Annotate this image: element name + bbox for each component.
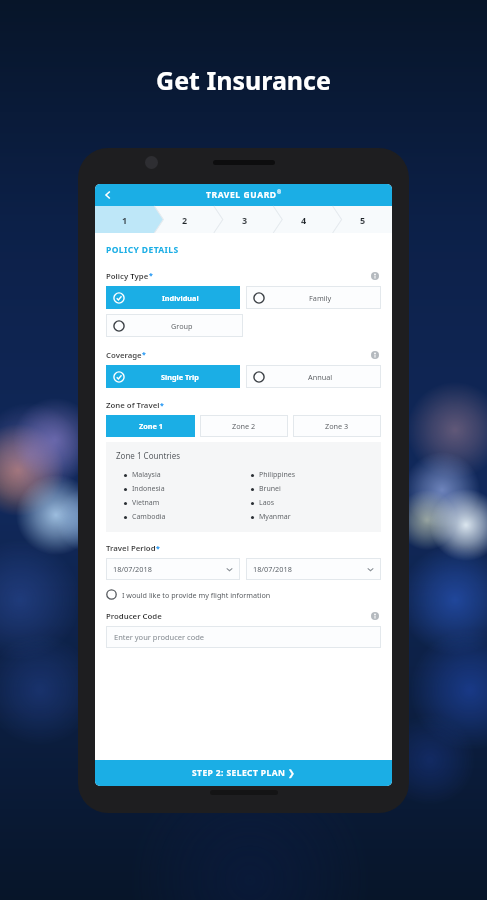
button[interactable]: Single Trip [106, 365, 240, 388]
staticText: Myanmar [259, 512, 291, 522]
staticText: Indonesia [132, 484, 165, 494]
staticText: Laos [259, 498, 275, 508]
button[interactable]: STEP 2: SELECT PLAN ❯ [95, 760, 392, 786]
staticText: 5 [360, 214, 366, 226]
staticText: Zone 1 Countries [116, 450, 180, 461]
staticText: Group [171, 321, 193, 331]
button[interactable]: 4 [274, 206, 333, 233]
staticText: * [160, 401, 164, 411]
staticText: I would like to provide my flight inform… [122, 590, 271, 600]
button[interactable]: 5 [333, 206, 392, 233]
staticText: Policy Type [106, 271, 149, 282]
staticText: Family [309, 293, 332, 303]
staticText: Get Insurance [0, 63, 487, 97]
staticText: Zone 2 [232, 421, 256, 431]
staticText: 2 [182, 214, 188, 226]
staticText: STEP 2: SELECT PLAN ❯ [192, 767, 296, 779]
staticText: Malaysia [132, 470, 161, 480]
button[interactable]: 18/07/2018 [246, 558, 381, 580]
button[interactable]: 1 [95, 206, 155, 233]
staticText: Cambodia [132, 512, 166, 522]
button[interactable]: I would like to provide my flight inform… [106, 589, 381, 600]
staticText: Individual [162, 293, 199, 303]
staticText: TRAVEL GUARD [206, 189, 277, 201]
staticText: * [142, 350, 146, 360]
staticText: Vietnam [132, 498, 160, 508]
button[interactable]: Zone 3 [293, 415, 381, 437]
staticText: Single Trip [161, 372, 199, 382]
staticText: Zone 3 [325, 421, 349, 431]
button[interactable]: Enter your producer code [106, 626, 381, 648]
staticText: Coverage [106, 350, 142, 361]
button[interactable]: Annual [246, 365, 381, 388]
button[interactable]: Individual [106, 286, 240, 309]
staticText: * [149, 271, 153, 281]
staticText: Zone of Travel [106, 400, 160, 411]
staticText: POLICY DETAILS [106, 244, 179, 256]
button[interactable]: Info about Coverage [369, 349, 381, 361]
staticText: Philippines [259, 470, 296, 480]
button[interactable]: 18/07/2018 [106, 558, 240, 580]
button[interactable]: Family [246, 286, 381, 309]
staticText: 18/07/2018 [253, 564, 292, 574]
button[interactable]: Zone 2 [200, 415, 288, 437]
staticText: Brunei [259, 484, 281, 494]
button[interactable]: 3 [215, 206, 274, 233]
staticText: Travel Period [106, 543, 156, 554]
button[interactable]: 2 [155, 206, 215, 233]
staticText: Enter your producer code [114, 632, 205, 642]
button[interactable]: Back [99, 186, 117, 204]
staticText: Zone 1 [139, 421, 163, 431]
staticText: 1 [122, 214, 128, 226]
staticText: * [156, 544, 160, 554]
staticText: ® [277, 189, 282, 196]
staticText: 3 [242, 214, 248, 226]
staticText: Annual [308, 372, 333, 382]
staticText: 18/07/2018 [113, 564, 152, 574]
button[interactable]: Group [106, 314, 243, 337]
staticText: 4 [301, 214, 307, 226]
button[interactable]: Info about Policy Type [369, 270, 381, 282]
button[interactable]: Zone 1 [106, 415, 195, 437]
staticText: Producer Code [106, 611, 162, 622]
button[interactable]: Info about Producer Code [369, 610, 381, 622]
